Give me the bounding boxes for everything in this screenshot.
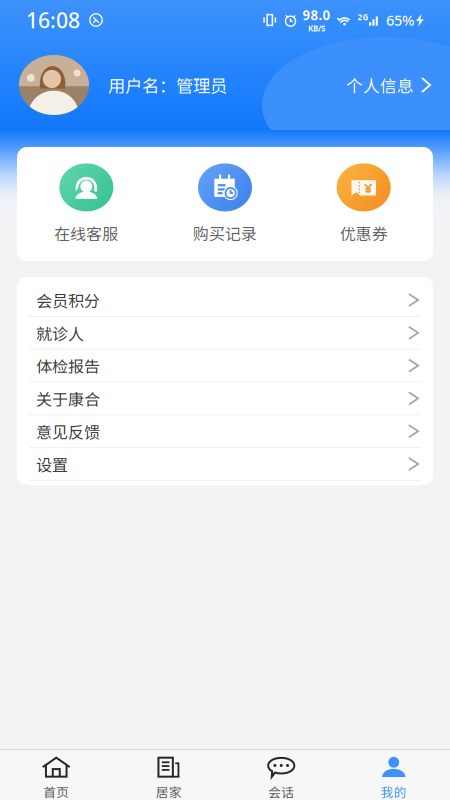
- staticText: 首页: [43, 783, 69, 800]
- button[interactable]: 居家: [112, 757, 225, 800]
- staticText: 16:08: [26, 6, 80, 34]
- button[interactable]: 会话: [225, 757, 337, 800]
- button[interactable]: 体检报告: [17, 350, 433, 382]
- button[interactable]: 意见反馈: [17, 415, 433, 448]
- staticText: 设置: [36, 452, 68, 476]
- button[interactable]: 首页: [0, 757, 112, 800]
- staticText: 65%: [386, 10, 414, 30]
- staticText: 在线客服: [54, 221, 118, 245]
- button[interactable]: 就诊人: [17, 317, 433, 350]
- button[interactable]: 优惠券: [294, 163, 433, 245]
- staticText: 关于康合: [36, 387, 100, 410]
- staticText: 2G: [357, 12, 368, 22]
- staticText: 会话: [268, 783, 294, 800]
- button[interactable]: 设置: [17, 448, 433, 481]
- staticText: 98.0: [302, 6, 330, 24]
- staticText: 优惠券: [340, 221, 388, 245]
- staticText: 会员积分: [36, 288, 100, 312]
- button[interactable]: 关于康合: [17, 382, 433, 415]
- button[interactable]: 在线客服: [17, 163, 156, 245]
- staticText: 意见反馈: [36, 420, 100, 443]
- staticText: 居家: [156, 783, 182, 800]
- staticText: 我的: [381, 783, 407, 800]
- staticText: 就诊人: [36, 321, 84, 344]
- button[interactable]: 我的: [337, 757, 450, 800]
- staticText: 个人信息: [346, 73, 414, 97]
- staticText: KB/S: [308, 23, 325, 34]
- staticText: 体检报告: [36, 354, 100, 377]
- staticText: 购买记录: [193, 221, 257, 245]
- button[interactable]: 个人信息: [346, 73, 431, 97]
- button[interactable]: 购买记录: [156, 163, 294, 245]
- staticText: 用户名：管理员: [108, 72, 227, 98]
- button[interactable]: 会员积分: [17, 284, 433, 317]
